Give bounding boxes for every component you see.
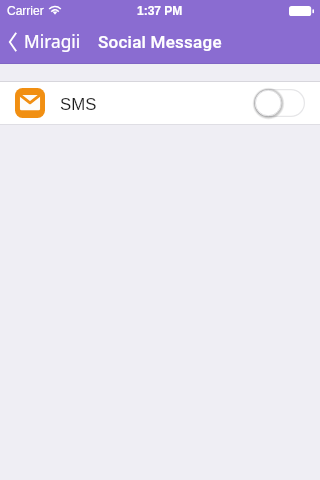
- staticText: Social Message: [98, 32, 222, 52]
- button[interactable]: Back to Miragii: [0, 24, 91, 60]
- staticText: Carrier: [7, 4, 44, 17]
- staticText: Miragii: [24, 30, 81, 54]
- staticText: SMS: [60, 95, 97, 114]
- staticText: 1:37 PM: [137, 4, 183, 17]
- button[interactable]: Enable SMS: [254, 89, 305, 117]
- button[interactable]: SMS: [0, 82, 320, 124]
